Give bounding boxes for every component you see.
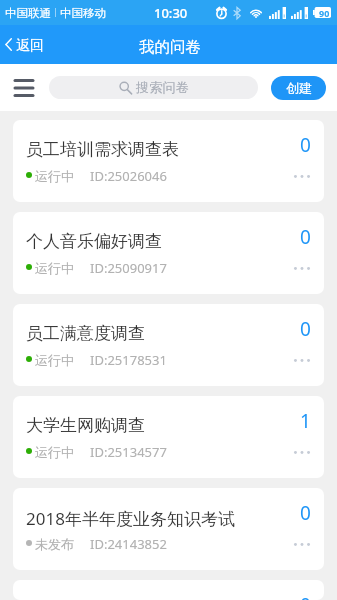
staticText: 大学生网购调查: [26, 415, 145, 436]
staticText: 返回: [16, 37, 44, 55]
button[interactable]: 返回: [0, 25, 50, 64]
staticText: 0: [300, 592, 311, 600]
staticText: ID:25026046: [90, 167, 167, 185]
staticText: ID:25178531: [90, 351, 167, 369]
button[interactable]: 搜索问卷: [49, 76, 258, 99]
staticText: ID:25090917: [90, 259, 167, 277]
staticText: 个人音乐偏好调查: [26, 231, 162, 252]
staticText: ID:25134577: [90, 443, 167, 461]
staticText: 未发布: [35, 536, 74, 552]
button[interactable]: 大学生网购调查: [13, 396, 324, 478]
staticText: 10:30: [154, 4, 188, 22]
staticText: 运行中: [35, 168, 74, 184]
button[interactable]: More options: [288, 535, 316, 553]
button[interactable]: 个人音乐偏好调查: [13, 212, 324, 294]
button[interactable]: Menu: [4, 68, 44, 108]
button[interactable]: 员工满意度调查: [13, 304, 324, 386]
staticText: 0: [300, 132, 311, 158]
button[interactable]: More options: [288, 167, 316, 185]
button[interactable]: More options: [288, 259, 316, 277]
button[interactable]: More options: [288, 351, 316, 369]
staticText: 搜索问卷: [136, 79, 189, 96]
staticText: ID:24143852: [90, 535, 167, 553]
staticText: 中国移动: [60, 6, 106, 20]
staticText: 员工满意度调查: [26, 323, 145, 344]
button[interactable]: 客户满意度问卷调查: [13, 580, 324, 600]
button[interactable]: More options: [288, 443, 316, 461]
staticText: 0: [300, 316, 311, 342]
staticText: 运行中: [35, 260, 74, 276]
staticText: 员工培训需求调查表: [26, 139, 179, 160]
staticText: 运行中: [35, 352, 74, 368]
staticText: 中国联通: [5, 6, 51, 20]
staticText: 0: [300, 500, 311, 526]
staticText: 90: [319, 7, 330, 18]
staticText: 创建: [286, 80, 312, 96]
staticText: 1: [300, 408, 311, 434]
staticText: 我的问卷: [139, 37, 201, 57]
button[interactable]: 2018年半年度业务知识考试: [13, 488, 324, 570]
staticText: 运行中: [35, 444, 74, 460]
staticText: 0: [300, 224, 311, 250]
button[interactable]: 创建: [271, 76, 326, 100]
button[interactable]: 员工培训需求调查表: [13, 120, 324, 202]
staticText: 2018年半年度业务知识考试: [26, 507, 235, 530]
